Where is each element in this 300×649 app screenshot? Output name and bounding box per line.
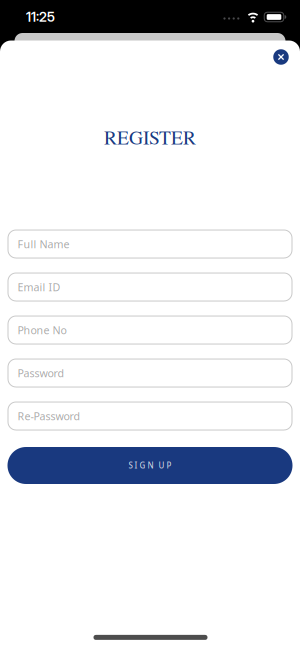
staticText: Password bbox=[17, 366, 64, 380]
staticText: Re-Password bbox=[17, 409, 80, 423]
button[interactable]: S I G N U P bbox=[7, 447, 292, 484]
staticText: Phone No bbox=[17, 323, 66, 337]
button[interactable]: Password bbox=[8, 359, 292, 387]
staticText: Full Name bbox=[17, 237, 69, 251]
staticText: REGISTER bbox=[104, 124, 196, 150]
staticText: 11:25 bbox=[26, 9, 55, 25]
staticText: Email ID bbox=[17, 280, 60, 294]
button[interactable]: Re-Password bbox=[8, 402, 292, 430]
staticText: S I G N U P bbox=[128, 460, 171, 471]
button[interactable]: Full Name bbox=[8, 230, 292, 258]
button[interactable]: Email ID bbox=[8, 273, 292, 301]
button[interactable]: Phone No bbox=[8, 316, 292, 344]
button[interactable]: Close bbox=[273, 49, 288, 64]
